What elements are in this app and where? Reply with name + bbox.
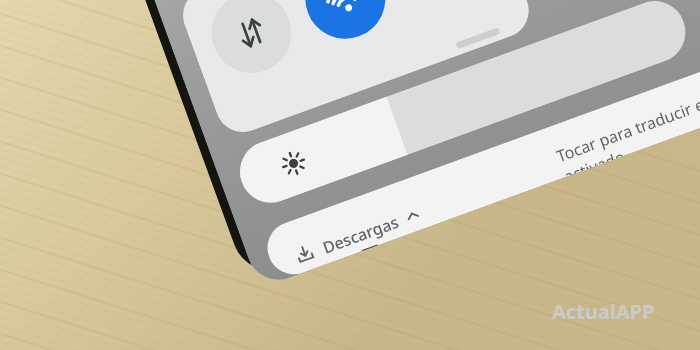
staticText: Tocar para traducir está activado <box>553 74 700 177</box>
button[interactable]: Datos móviles <box>200 0 303 84</box>
button[interactable]: Wi-Fi <box>294 0 397 50</box>
staticText: ActualAPP <box>552 298 655 325</box>
button[interactable]: Descargas <box>260 47 700 282</box>
button[interactable]: Brillo <box>231 0 694 211</box>
staticText: Descargas <box>320 211 402 259</box>
